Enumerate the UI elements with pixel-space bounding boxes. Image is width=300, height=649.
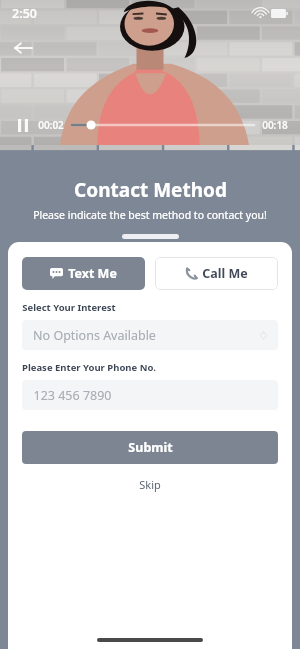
button[interactable]: No Options Available [22,320,278,350]
button[interactable]: Back [6,32,38,64]
staticText: 2:50 [12,5,37,22]
button[interactable]: Skip [121,473,179,496]
staticText: Skip [139,477,161,492]
button[interactable]: Pause [12,114,34,136]
staticText: Contact Method [74,177,227,203]
staticText: 123 456 7890 [33,387,112,404]
staticText: Please indicate the best method to conta… [33,208,267,222]
button[interactable]: Submit [22,431,278,464]
staticText: 00:18 [262,118,288,132]
staticText: 00:02 [38,118,64,132]
staticText: Please Enter Your Phone No. [22,361,156,374]
staticText: Select Your Interest [22,301,116,314]
staticText: Call Me [202,265,248,282]
staticText: Submit [128,439,173,456]
button[interactable]: 123 456 7890 [22,380,278,410]
staticText: Text Me [68,265,117,282]
staticText: No Options Available [33,327,156,344]
button[interactable]: Call Me [155,257,278,290]
button[interactable]: Text Me [22,257,145,290]
